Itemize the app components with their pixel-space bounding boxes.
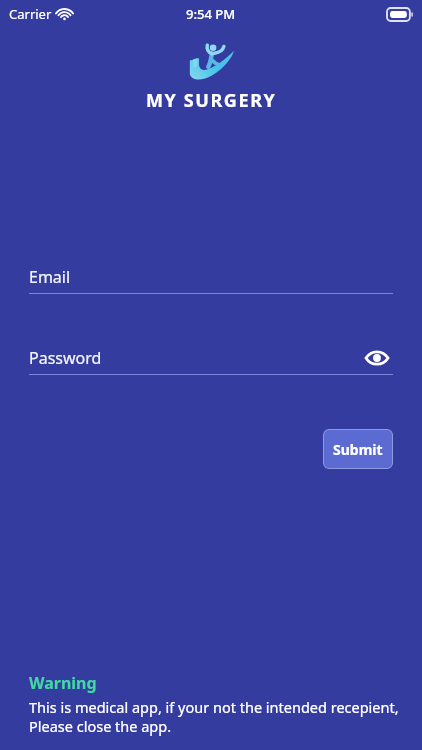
staticText: Password: [29, 347, 102, 369]
button[interactable]: Show password: [361, 342, 393, 374]
button[interactable]: Email: [29, 261, 393, 293]
staticText: Warning: [29, 672, 97, 694]
staticText: 9:54 PM: [186, 5, 236, 23]
staticText: Email: [29, 266, 71, 288]
staticText: MY SURGERY: [146, 88, 277, 113]
staticText: This is medical app, if your not the int…: [29, 697, 399, 736]
button[interactable]: Submit: [323, 429, 393, 469]
button[interactable]: Password: [29, 342, 393, 374]
staticText: Carrier: [9, 5, 52, 23]
staticText: Submit: [333, 440, 383, 459]
